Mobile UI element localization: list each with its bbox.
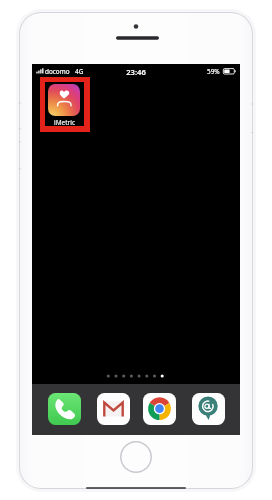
button[interactable]: Gmail (97, 393, 130, 425)
staticText: 59% (207, 67, 220, 76)
other: Chrome (143, 393, 176, 425)
button[interactable]: Mail (192, 393, 225, 425)
other: Mail (192, 393, 225, 425)
button[interactable]: Phone (48, 393, 81, 425)
other: Phone (48, 393, 81, 425)
staticText: 4G (75, 67, 84, 76)
button[interactable]: Chrome (143, 393, 176, 425)
other: Gmail (97, 393, 130, 425)
staticText: docomo (45, 67, 70, 76)
button[interactable]: iMetric (40, 77, 90, 132)
staticText: 23:46 (106, 67, 166, 77)
staticText: iMetric (45, 118, 84, 127)
